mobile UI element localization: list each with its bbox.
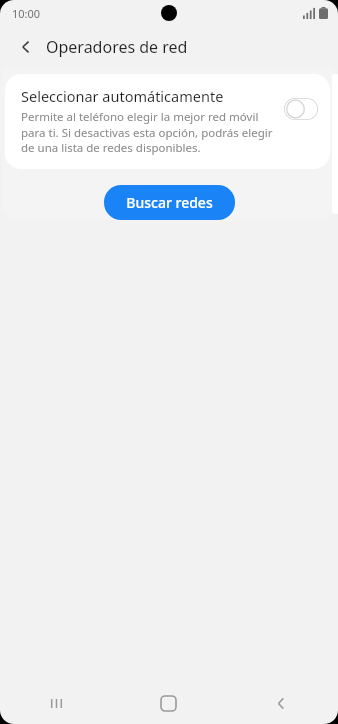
button[interactable]: Seleccionar automáticamente	[284, 98, 318, 120]
button[interactable]: Recientes	[0, 682, 112, 724]
staticText: Seleccionar automáticamente	[21, 86, 224, 106]
button[interactable]: Buscar redes	[104, 185, 235, 220]
button[interactable]: Atrás	[225, 682, 338, 724]
button[interactable]: Atrás	[8, 29, 44, 65]
staticText: 10:00	[12, 6, 41, 21]
button[interactable]: Inicio	[112, 682, 225, 724]
staticText: Permite al teléfono elegir la mejor red …	[21, 109, 276, 155]
staticText: Buscar redes	[126, 193, 213, 212]
staticText: Operadores de red	[46, 36, 188, 58]
button[interactable]: Seleccionar automáticamente	[5, 74, 330, 169]
